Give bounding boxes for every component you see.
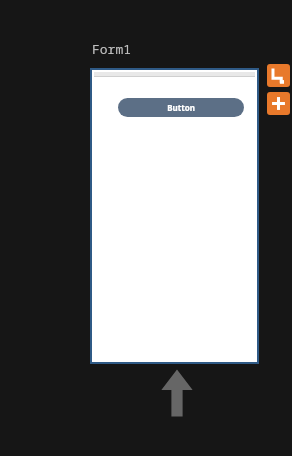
button[interactable]: Add component: [267, 92, 290, 115]
staticText: Button: [167, 102, 195, 113]
button[interactable]: Scroll up: [160, 368, 194, 418]
button[interactable]: Button: [118, 98, 244, 117]
button[interactable]: Insert layout: [267, 64, 290, 87]
button[interactable]: Button: [90, 68, 259, 364]
staticText: Form1: [92, 40, 132, 58]
